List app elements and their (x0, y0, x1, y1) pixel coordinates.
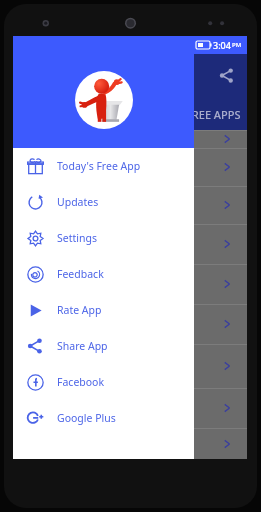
button[interactable]: Share (213, 62, 239, 88)
button[interactable]: Share App (13, 328, 194, 364)
button[interactable] (13, 148, 247, 186)
button[interactable] (13, 36, 194, 148)
button[interactable]: Facebook (13, 364, 194, 400)
staticText: Rate App (57, 303, 102, 317)
staticText: 3:04 (213, 39, 231, 51)
button[interactable]: s (13, 264, 247, 304)
staticText: FREE APPS (186, 107, 241, 122)
button[interactable]: Feedback (13, 256, 194, 292)
button[interactable] (13, 186, 247, 224)
button[interactable]: Updates (13, 184, 194, 220)
button[interactable] (13, 224, 247, 264)
button[interactable]: Settings (13, 220, 194, 256)
button[interactable] (13, 304, 247, 344)
staticText: Feedback (57, 267, 104, 281)
button[interactable] (13, 428, 247, 459)
staticText: Today's Free App (57, 159, 141, 173)
staticText: Settings (57, 231, 97, 245)
button[interactable] (13, 130, 247, 148)
button[interactable] (13, 388, 247, 428)
button[interactable]: Google Plus (13, 400, 194, 436)
button[interactable]: Today's Free App (13, 148, 194, 184)
button[interactable]: Rate App (13, 292, 194, 328)
staticText: Updates (57, 195, 99, 209)
button[interactable] (13, 344, 247, 388)
staticText: Facebook (57, 375, 105, 389)
staticText: PM (232, 41, 242, 49)
staticText: Share App (57, 339, 108, 353)
staticText: Google Plus (57, 411, 116, 425)
